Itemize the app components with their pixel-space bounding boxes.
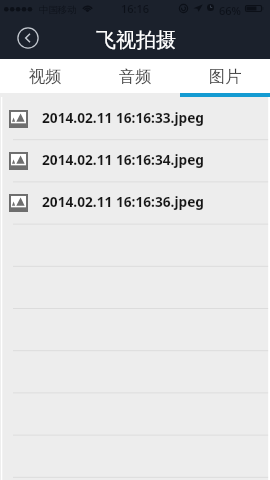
button[interactable]: 视频 xyxy=(0,59,90,93)
button[interactable]: 音频 xyxy=(90,59,180,93)
staticText: 2014.02.11 16:16:34.jpeg xyxy=(42,150,204,169)
button[interactable]: 2014.02.11 16:16:34.jpeg xyxy=(0,139,270,181)
button[interactable]: 2014.02.11 16:16:33.jpeg xyxy=(0,97,270,139)
staticText: 图片 xyxy=(209,66,242,87)
staticText: 视频 xyxy=(29,66,62,87)
staticText: 飞视拍摄 xyxy=(96,28,176,53)
staticText: 66% xyxy=(219,3,241,18)
button[interactable]: 图片 xyxy=(180,59,270,93)
staticText: 中国移动 xyxy=(39,4,77,16)
staticText: 16:16 xyxy=(121,1,150,16)
staticText: 音频 xyxy=(119,66,152,87)
button[interactable]: 2014.02.11 16:16:36.jpeg xyxy=(0,181,270,223)
staticText: 2014.02.11 16:16:33.jpeg xyxy=(42,108,204,127)
button[interactable]: Back xyxy=(17,27,39,49)
staticText: 2014.02.11 16:16:36.jpeg xyxy=(42,192,204,211)
